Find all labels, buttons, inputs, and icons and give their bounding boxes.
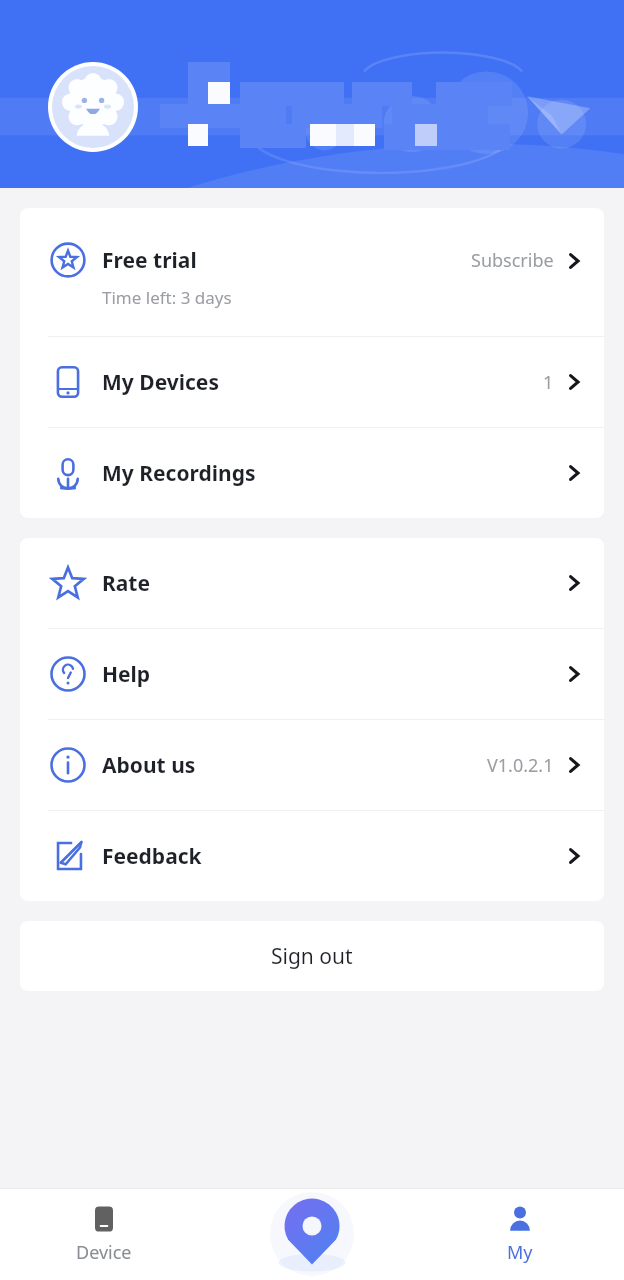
button[interactable]: Rate — [20, 538, 604, 628]
button[interactable]: About us — [20, 720, 604, 810]
button[interactable]: Profile avatar — [48, 62, 138, 152]
staticText: About us — [102, 751, 196, 780]
button[interactable]: My Recordings — [20, 428, 604, 518]
staticText: Help — [102, 660, 151, 689]
button[interactable]: Locate — [208, 1188, 416, 1280]
button[interactable]: Feedback — [20, 811, 604, 901]
staticText: My Recordings — [102, 459, 256, 488]
button[interactable]: Sign out — [20, 921, 604, 991]
button[interactable]: My — [416, 1188, 624, 1280]
staticText: Subscribe — [471, 248, 554, 273]
staticText: 1 — [543, 370, 554, 395]
staticText: Sign out — [271, 942, 353, 971]
button[interactable]: Device — [0, 1188, 208, 1280]
button[interactable]: Free trial — [20, 208, 604, 336]
staticText: V1.0.2.1 — [487, 753, 554, 778]
staticText: Time left: 3 days — [102, 286, 232, 309]
staticText: Feedback — [102, 842, 202, 871]
button[interactable]: Help — [20, 629, 604, 719]
staticText: Device — [76, 1240, 132, 1265]
staticText: Rate — [102, 569, 151, 598]
staticText: Free trial — [102, 246, 197, 275]
staticText: My Devices — [102, 368, 219, 397]
button[interactable]: My Devices — [20, 337, 604, 427]
staticText: My — [507, 1240, 533, 1265]
